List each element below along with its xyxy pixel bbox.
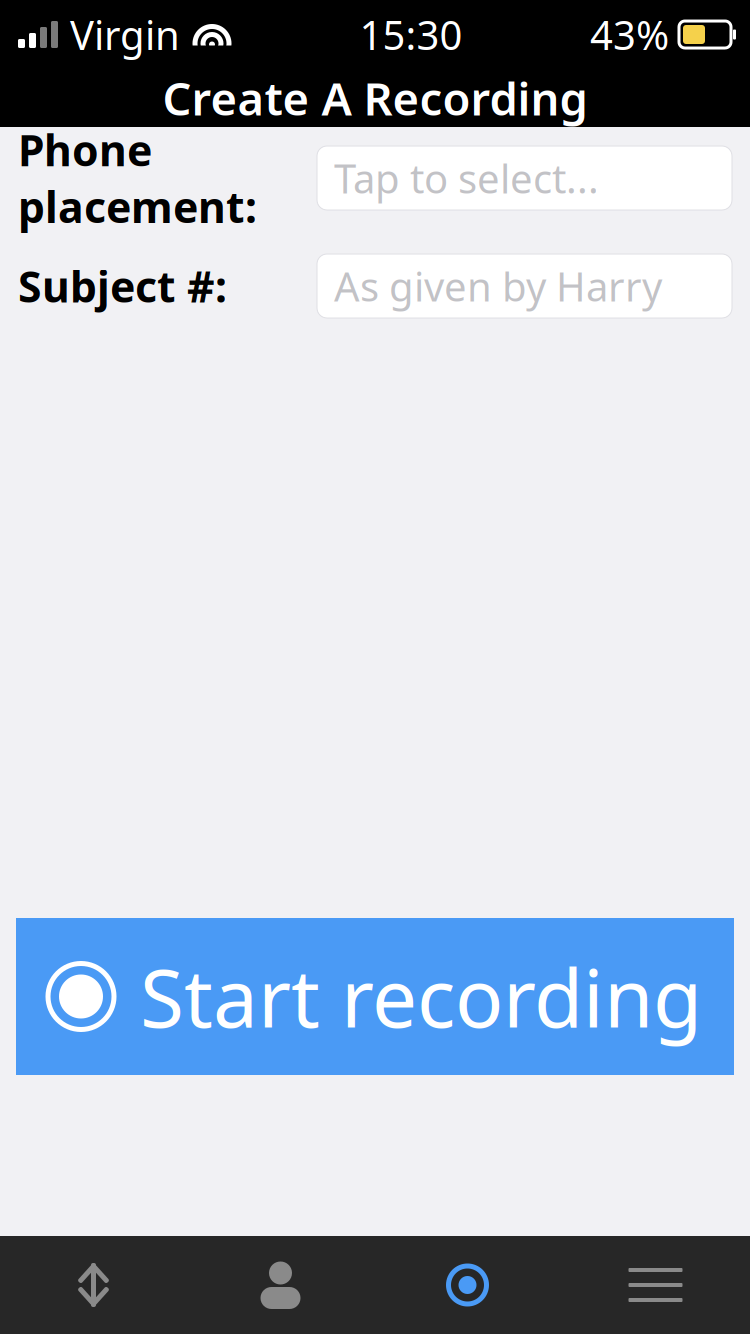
button[interactable]: Menu bbox=[561, 1236, 750, 1334]
staticText: Create A Recording bbox=[162, 68, 587, 128]
button[interactable]: Bluetooth bbox=[0, 1236, 187, 1334]
staticText: Tap to select... bbox=[334, 151, 599, 204]
button[interactable]: Tap to select... bbox=[317, 146, 732, 210]
staticText: 43% bbox=[590, 8, 669, 61]
button[interactable]: As given by Harry bbox=[317, 254, 732, 318]
button[interactable]: Start recording bbox=[16, 918, 734, 1075]
button[interactable]: Record bbox=[374, 1236, 561, 1334]
staticText: 15:30 bbox=[359, 8, 462, 61]
staticText: Phone placement: bbox=[18, 121, 257, 235]
staticText: Start recording bbox=[140, 943, 702, 1050]
button[interactable]: Profile bbox=[187, 1236, 374, 1334]
staticText: Virgin bbox=[70, 8, 180, 61]
staticText: Subject #: bbox=[18, 258, 227, 314]
staticText: As given by Harry bbox=[334, 259, 662, 312]
